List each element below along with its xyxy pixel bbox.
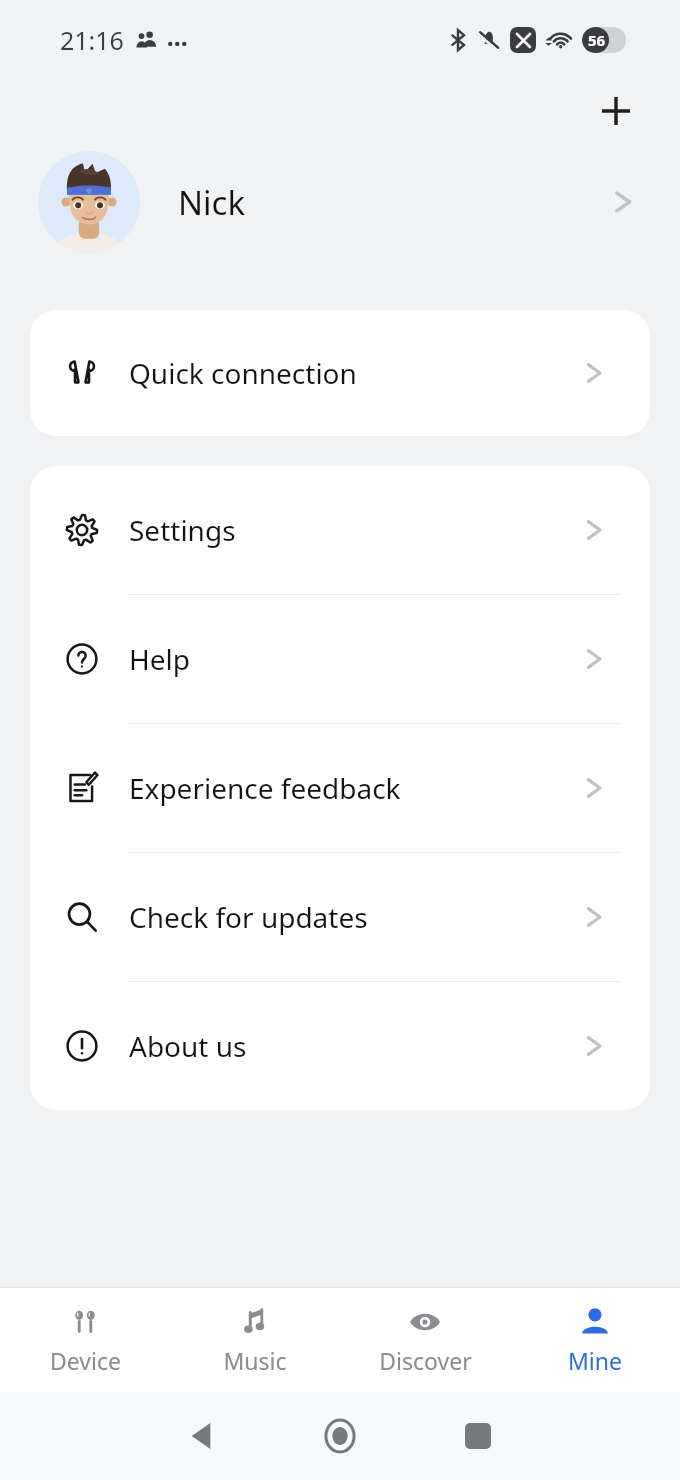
button[interactable]: Back xyxy=(157,1392,247,1480)
staticText: About us xyxy=(129,1027,247,1065)
button[interactable]: Nick xyxy=(0,142,680,262)
button[interactable]: Device xyxy=(0,1288,170,1392)
staticText: Music xyxy=(223,1345,287,1376)
staticText: Discover xyxy=(379,1345,472,1376)
staticText: Experience feedback xyxy=(129,769,401,807)
staticText: Mine xyxy=(568,1345,622,1376)
button[interactable]: Discover xyxy=(340,1288,510,1392)
button[interactable]: Recent apps xyxy=(433,1392,523,1480)
staticText: Nick xyxy=(178,180,246,225)
staticText: Check for updates xyxy=(129,898,368,936)
staticText: Device xyxy=(50,1345,121,1376)
button[interactable]: Add device xyxy=(590,85,642,137)
staticText: Quick connection xyxy=(129,354,357,392)
button[interactable]: Help xyxy=(30,595,650,723)
button[interactable]: Music xyxy=(170,1288,340,1392)
button[interactable]: Home xyxy=(295,1392,385,1480)
button[interactable]: Quick connection xyxy=(30,310,650,436)
button[interactable]: Mine xyxy=(510,1288,680,1392)
staticText: 21:16 xyxy=(60,23,124,57)
staticText: 56 xyxy=(588,30,606,50)
button[interactable]: Check for updates xyxy=(30,853,650,981)
button[interactable]: Experience feedback xyxy=(30,724,650,852)
button[interactable]: About us xyxy=(30,982,650,1110)
staticText: Settings xyxy=(129,511,236,549)
button[interactable]: Settings xyxy=(30,466,650,594)
staticText: Help xyxy=(129,640,190,678)
